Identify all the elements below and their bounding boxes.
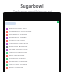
staticText: Cherry Pie Slice: [9, 39, 25, 42]
staticText: Pistachio Cream: [9, 57, 26, 60]
button[interactable]: [3, 12, 61, 21]
button[interactable]: [5, 22, 16, 25]
button[interactable]: Blueberry Muffin: [5, 36, 59, 39]
button[interactable]: Lavender Macaron: [5, 42, 59, 45]
button[interactable]: Cherry Pie Slice: [5, 39, 59, 42]
button[interactable]: Grape Sorbet Cup: [5, 48, 59, 51]
button[interactable]: Red Velvet Bite: [5, 54, 59, 57]
button[interactable]: Berry Pavlova: [5, 66, 59, 69]
button[interactable]: Strawberry Shortcake: [5, 30, 59, 33]
button[interactable]: Raspberry Danish: [5, 33, 59, 36]
button[interactable]: Espresso Brownie: [5, 45, 59, 48]
staticText: Strawberry Shortcake: [9, 30, 32, 33]
staticText: Grape Sorbet Cup: [9, 48, 28, 51]
staticText: Blackcurrant Tart: [9, 27, 27, 30]
staticText: Sugarbowl: [20, 3, 44, 9]
staticText: Rhubarb Crumble: [9, 60, 28, 63]
staticText: Raspberry Danish: [9, 33, 28, 36]
button[interactable]: Blackcurrant Tart: [5, 27, 59, 30]
button[interactable]: Rhubarb Crumble: [5, 60, 59, 63]
staticText: Track every sweet thing you eat: [13, 10, 52, 12]
staticText: Matcha Swiss Roll: [9, 51, 28, 54]
button[interactable]: Matcha Swiss Roll: [5, 51, 59, 54]
staticText: Espresso Brownie: [9, 45, 28, 48]
staticText: Blueberry Muffin: [9, 36, 27, 39]
staticText: Berry Pavlova: [9, 66, 23, 69]
staticText: Mint Choc Cookie: [9, 63, 27, 66]
staticText: Red Velvet Bite: [9, 54, 25, 57]
staticText: Lavender Macaron: [9, 42, 29, 45]
button[interactable]: Mint Choc Cookie: [5, 63, 59, 66]
button[interactable]: Pistachio Cream: [5, 57, 59, 60]
